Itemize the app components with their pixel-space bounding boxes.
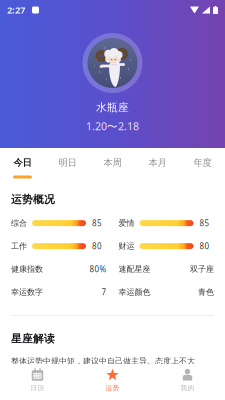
staticText: 今日 bbox=[13, 157, 31, 168]
staticText: 日历 bbox=[30, 384, 44, 392]
staticText: 幸运数字 bbox=[11, 287, 43, 297]
button[interactable]: 我的 bbox=[150, 364, 225, 400]
staticText: 年度 bbox=[193, 157, 211, 168]
staticText: 80% bbox=[89, 264, 106, 274]
staticText: 幸运颜色 bbox=[118, 287, 150, 297]
staticText: 7 bbox=[101, 287, 106, 297]
staticText: 整体运势中规中矩，建议中自己做主导。态度上不大 bbox=[11, 356, 195, 366]
staticText: 综合 bbox=[11, 218, 27, 228]
staticText: 运势概况 bbox=[11, 193, 55, 206]
staticText: 1.20〜2.18 bbox=[86, 119, 139, 133]
staticText: 速配星座 bbox=[118, 264, 150, 274]
staticText: 财运 bbox=[118, 241, 134, 251]
staticText: 爱情 bbox=[118, 218, 134, 228]
staticText: 本周 bbox=[103, 157, 121, 168]
staticText: 本月 bbox=[148, 157, 166, 168]
staticText: 85 bbox=[199, 218, 209, 228]
staticText: 水瓶座 bbox=[96, 101, 129, 114]
staticText: 青色 bbox=[198, 287, 214, 297]
button[interactable]: 本周 bbox=[90, 148, 135, 180]
button[interactable]: 运势 bbox=[75, 364, 150, 400]
staticText: 80 bbox=[199, 241, 209, 251]
staticText: 健康指数 bbox=[11, 264, 43, 274]
staticText: 星座解读 bbox=[11, 332, 55, 345]
staticText: 我的 bbox=[180, 384, 194, 392]
button[interactable]: 本月 bbox=[135, 148, 180, 180]
button[interactable]: 日历 bbox=[0, 364, 75, 400]
staticText: 工作 bbox=[11, 241, 27, 251]
staticText: 85 bbox=[92, 218, 102, 228]
button[interactable]: 年度 bbox=[180, 148, 225, 180]
button[interactable]: 明日 bbox=[45, 148, 90, 180]
staticText: 明日 bbox=[58, 157, 76, 168]
staticText: 2:27 bbox=[7, 4, 25, 16]
staticText: 双子座 bbox=[190, 264, 214, 274]
staticText: 80 bbox=[92, 241, 102, 251]
staticText: 运势 bbox=[105, 384, 119, 392]
button[interactable]: 今日 bbox=[0, 148, 45, 180]
